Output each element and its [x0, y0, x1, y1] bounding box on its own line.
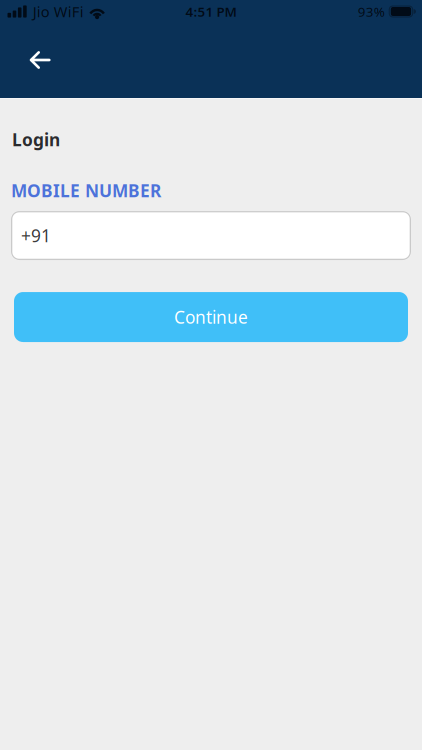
staticText: Login	[12, 128, 60, 151]
staticText: 93%	[358, 3, 385, 20]
staticText: 4:51 PM	[185, 3, 236, 20]
staticText: +91	[21, 224, 51, 247]
staticText: Jio WiFi	[33, 2, 84, 21]
staticText: Continue	[174, 305, 248, 328]
button[interactable]: Continue	[14, 292, 408, 342]
button[interactable]: +91	[11, 211, 411, 260]
button[interactable]: Back	[12, 37, 68, 83]
staticText: MOBILE NUMBER	[11, 179, 161, 202]
